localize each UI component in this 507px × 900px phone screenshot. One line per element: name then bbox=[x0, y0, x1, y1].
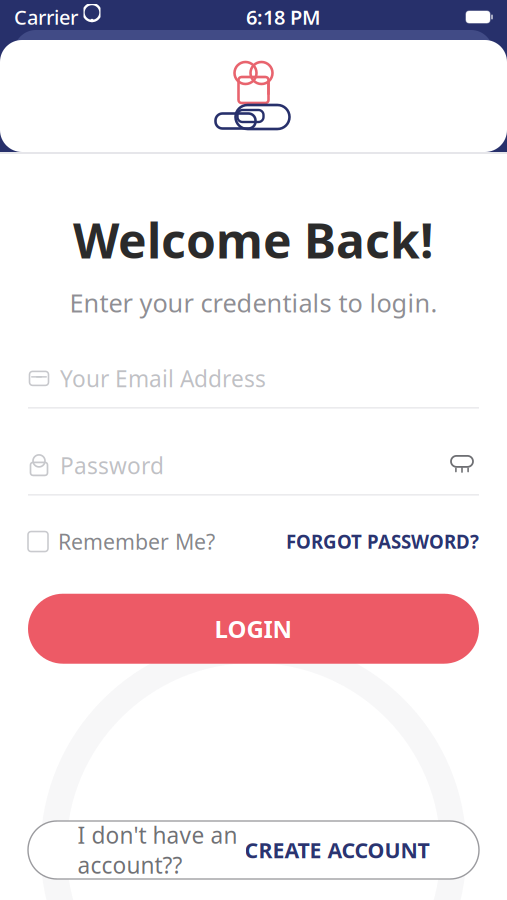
staticText: CREATE ACCOUNT bbox=[244, 836, 429, 864]
staticText: Password bbox=[60, 450, 164, 480]
button[interactable]: Show password bbox=[445, 450, 479, 480]
staticText: FORGOT PASSWORD? bbox=[286, 529, 479, 554]
button[interactable]: Remember Me? bbox=[28, 521, 215, 562]
staticText: 6:18 PM bbox=[246, 4, 321, 30]
button[interactable]: FORGOT PASSWORD? bbox=[286, 523, 479, 560]
staticText: Your Email Address bbox=[60, 363, 266, 393]
staticText: LOGIN bbox=[214, 613, 292, 645]
button[interactable]: I don't have an account?? bbox=[28, 821, 479, 879]
staticText: I don't have an account?? bbox=[77, 820, 237, 880]
staticText: Carrier bbox=[14, 4, 78, 30]
staticText: Remember Me? bbox=[58, 527, 215, 556]
staticText: Welcome Back! bbox=[73, 208, 434, 272]
staticText: Enter your credentials to login. bbox=[69, 286, 437, 319]
button[interactable]: LOGIN bbox=[28, 594, 479, 664]
